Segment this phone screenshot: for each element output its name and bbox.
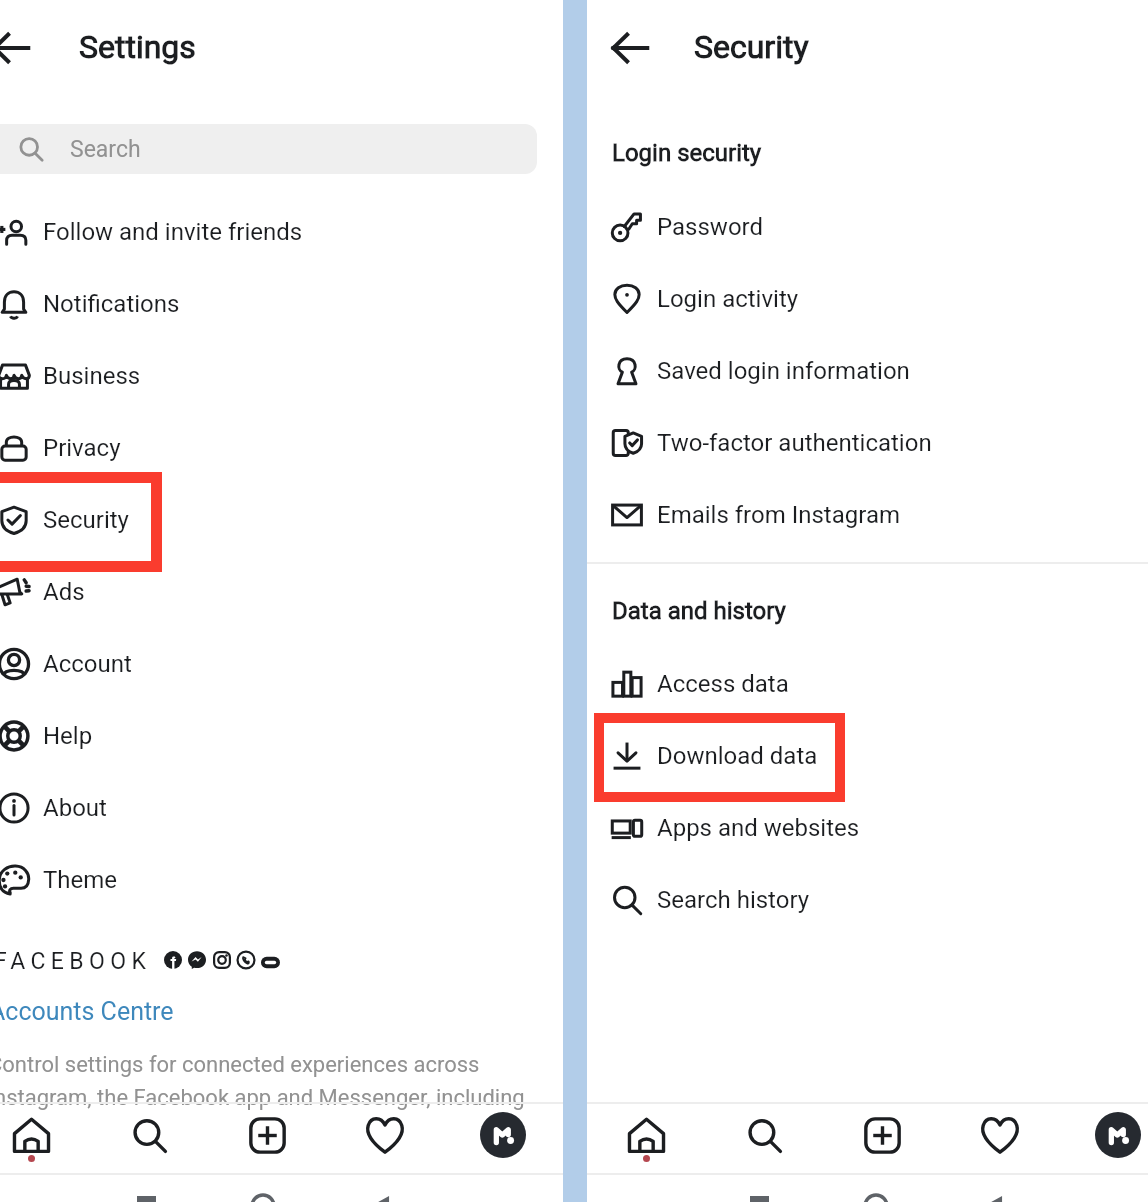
staticText: FACEBOOK: [0, 948, 152, 975]
button[interactable]: Security: [0, 484, 563, 556]
button[interactable]: Help: [0, 700, 563, 772]
button[interactable]: About: [0, 772, 563, 844]
staticText: Notifications: [43, 290, 180, 318]
button[interactable]: Theme: [0, 844, 563, 916]
staticText: Download data: [657, 742, 818, 770]
staticText: Security: [694, 28, 809, 66]
staticText: Apps and websites: [657, 814, 860, 842]
button[interactable]: Notifications: [0, 268, 563, 340]
button[interactable]: Ads: [0, 556, 563, 628]
button[interactable]: Two-factor authentication: [587, 407, 1148, 479]
staticText: Search history: [657, 886, 810, 914]
staticText: Privacy: [43, 434, 121, 462]
button[interactable]: Home: [620, 1109, 672, 1161]
staticText: Account: [43, 650, 132, 678]
button[interactable]: Activity: [974, 1109, 1026, 1161]
button[interactable]: Back: [607, 25, 653, 71]
staticText: Ads: [43, 578, 85, 606]
button[interactable]: Saved login information: [587, 335, 1148, 407]
staticText: Security: [43, 506, 129, 534]
staticText: Access data: [657, 670, 789, 698]
button[interactable]: Accounts Centre: [0, 997, 174, 1026]
staticText: Control settings for connected experienc…: [0, 1052, 480, 1078]
button[interactable]: Back: [0, 25, 34, 71]
button[interactable]: Search: [738, 1109, 790, 1161]
staticText: Login activity: [657, 285, 799, 313]
staticText: Emails from Instagram: [657, 501, 900, 529]
button[interactable]: Profile: [477, 1109, 529, 1161]
staticText: Theme: [43, 866, 118, 894]
staticText: Two-factor authentication: [657, 429, 932, 457]
button[interactable]: Apps and websites: [587, 792, 1148, 864]
staticText: Saved login information: [657, 357, 910, 385]
staticText: About: [43, 794, 107, 822]
staticText: Password: [657, 213, 764, 241]
button[interactable]: Access data: [587, 648, 1148, 720]
staticText: Settings: [79, 28, 196, 66]
button[interactable]: Search: [0, 124, 537, 174]
button[interactable]: Activity: [359, 1109, 411, 1161]
button[interactable]: Login activity: [587, 263, 1148, 335]
staticText: Follow and invite friends: [43, 218, 303, 246]
staticText: Search: [70, 136, 141, 163]
staticText: Data and history: [612, 597, 786, 625]
button[interactable]: Account: [0, 628, 563, 700]
button[interactable]: Business: [0, 340, 563, 412]
staticText: Instagram, the Facebook app and Messenge…: [0, 1085, 525, 1111]
button[interactable]: Home: [5, 1109, 57, 1161]
button[interactable]: Search: [123, 1109, 175, 1161]
button[interactable]: Password: [587, 191, 1148, 263]
button[interactable]: Follow and invite friends: [0, 196, 563, 268]
staticText: Business: [43, 362, 141, 390]
staticText: Help: [43, 722, 93, 750]
button[interactable]: Search history: [587, 864, 1148, 936]
button[interactable]: Create: [241, 1109, 293, 1161]
button[interactable]: Profile: [1092, 1109, 1144, 1161]
button[interactable]: Emails from Instagram: [587, 479, 1148, 551]
button[interactable]: Create: [856, 1109, 908, 1161]
button[interactable]: Privacy: [0, 412, 563, 484]
staticText: Login security: [612, 139, 762, 167]
button[interactable]: Download data: [587, 720, 1148, 792]
